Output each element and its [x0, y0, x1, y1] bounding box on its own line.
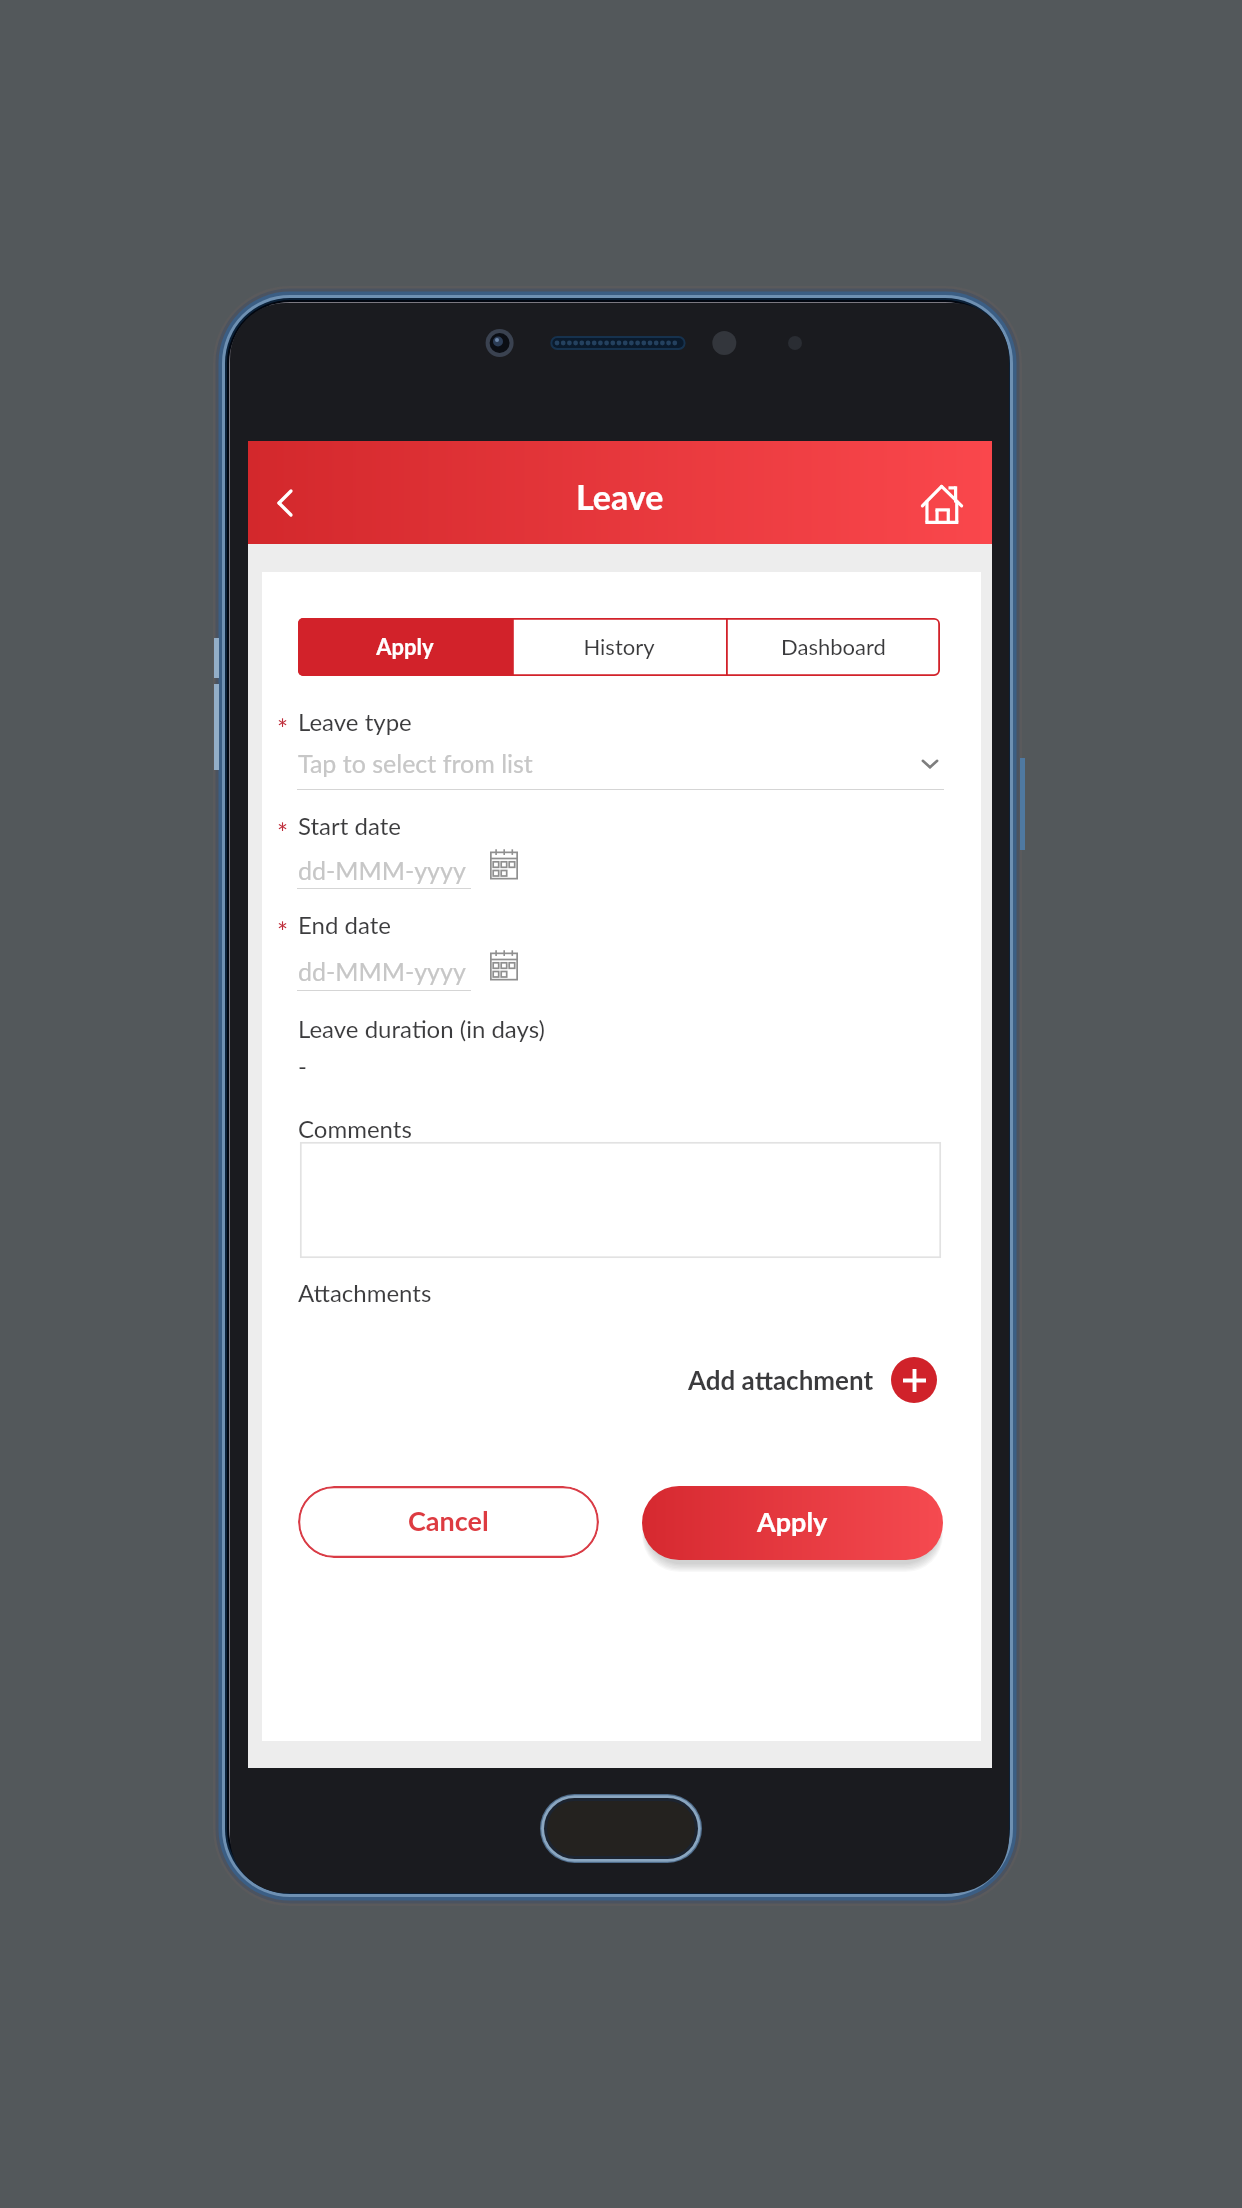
staticText: End date	[298, 910, 391, 939]
button[interactable]: Pick date	[474, 935, 534, 995]
button[interactable]: Home	[900, 463, 982, 527]
staticText: -	[298, 1051, 307, 1080]
staticText: Start date	[298, 811, 401, 840]
button[interactable]: Apply	[298, 618, 512, 676]
button[interactable]: Dashboard	[726, 618, 940, 676]
button[interactable]: History	[512, 618, 726, 676]
button[interactable]: Open list	[904, 741, 956, 787]
staticText: dd-MMM-yyyy	[298, 855, 466, 885]
button[interactable]: Apply	[642, 1486, 943, 1560]
staticText: Apply	[757, 1505, 828, 1537]
staticText: Apply	[376, 633, 434, 659]
staticText: dd-MMM-yyyy	[298, 956, 466, 986]
button[interactable]: Pick date	[474, 834, 534, 894]
staticText: Cancel	[408, 1504, 489, 1536]
button[interactable]: Comments input	[300, 1142, 941, 1258]
staticText: Leave	[576, 476, 664, 517]
button[interactable]: Back	[258, 457, 328, 527]
button[interactable]	[297, 850, 471, 892]
staticText: *	[277, 916, 289, 947]
button[interactable]: Add attachment	[688, 1357, 937, 1403]
staticText: Tap to select from list	[298, 748, 533, 778]
staticText: *	[277, 713, 289, 744]
staticText: Add attachment	[688, 1364, 874, 1395]
staticText: Leave duration (in days)	[298, 1014, 545, 1043]
button[interactable]: Cancel	[298, 1486, 599, 1558]
staticText: Comments	[298, 1114, 412, 1143]
button[interactable]	[297, 951, 471, 993]
staticText: History	[583, 633, 655, 659]
staticText: Attachments	[298, 1278, 432, 1307]
staticText: Dashboard	[781, 633, 886, 659]
staticText: Leave type	[298, 707, 412, 736]
staticText: *	[277, 817, 289, 848]
button[interactable]	[297, 748, 944, 792]
